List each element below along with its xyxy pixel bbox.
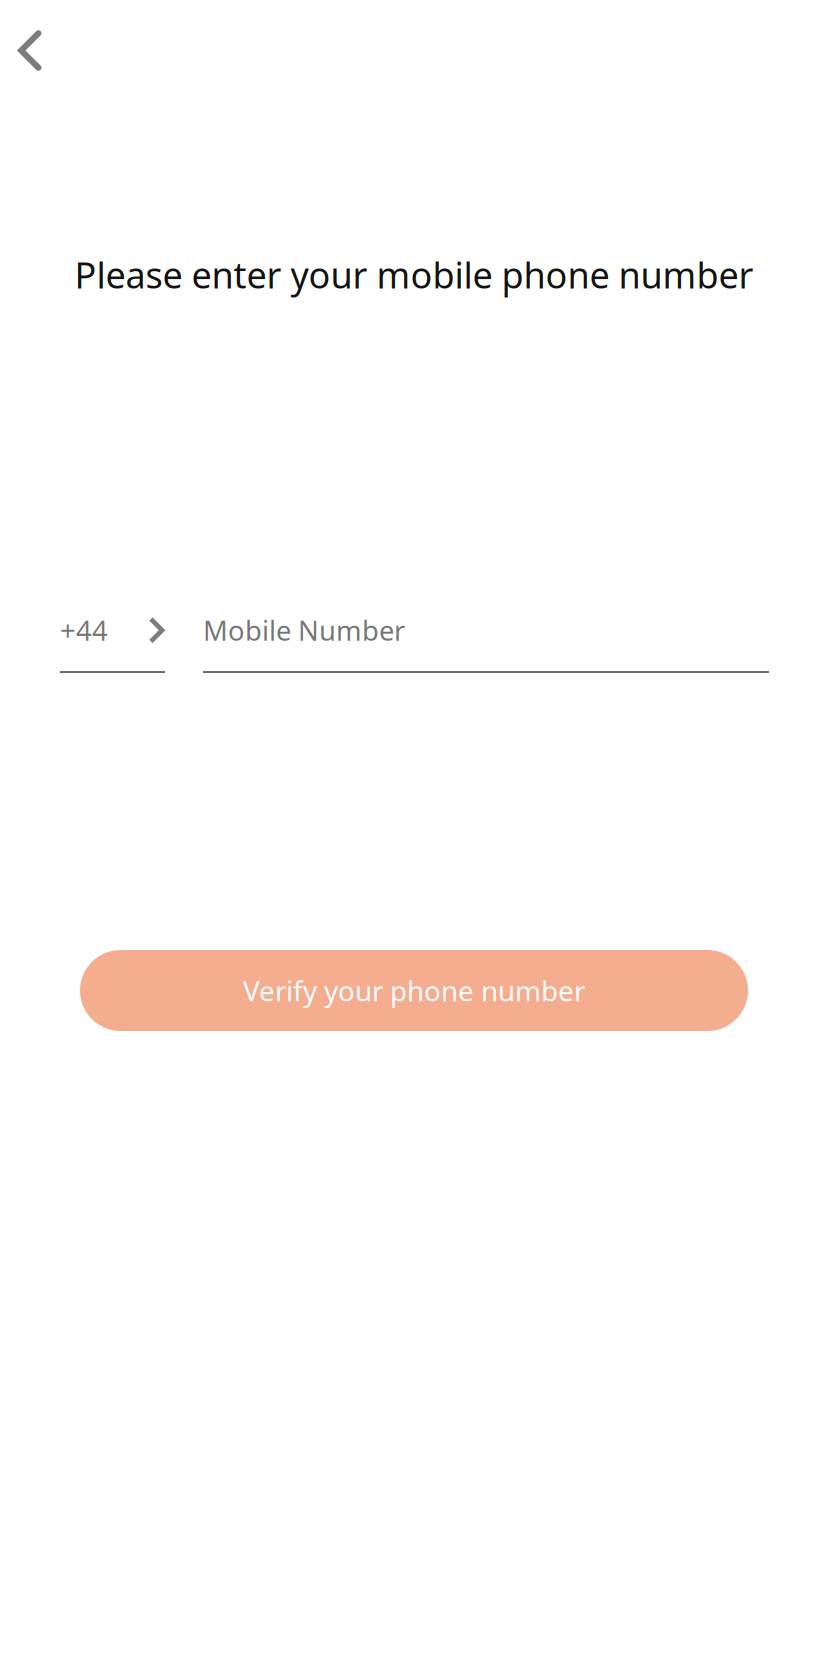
staticText: Mobile Number — [203, 611, 405, 649]
button[interactable]: Verify your phone number — [80, 950, 748, 1031]
staticText: Verify your phone number — [243, 972, 585, 1009]
button[interactable]: +44 — [60, 612, 165, 673]
staticText: Please enter your mobile phone number — [74, 250, 753, 299]
button[interactable]: Back — [0, 0, 72, 91]
button[interactable]: Mobile Number — [203, 612, 769, 673]
staticText: +44 — [60, 611, 108, 649]
